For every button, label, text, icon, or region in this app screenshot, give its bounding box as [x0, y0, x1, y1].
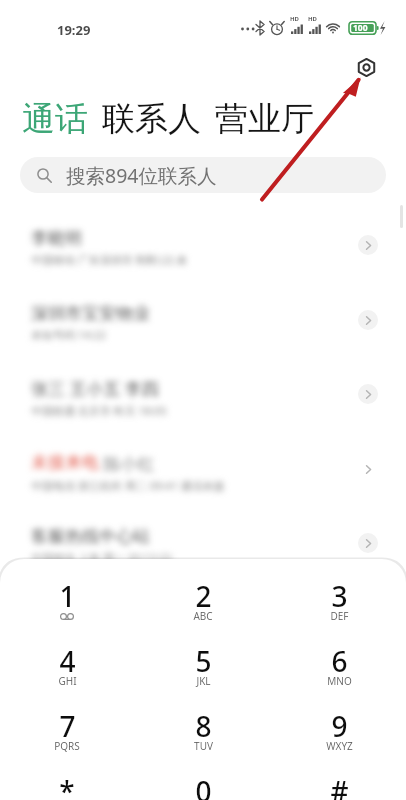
button[interactable]: 4: [22, 634, 112, 696]
staticText: 19:29: [57, 21, 91, 39]
staticText: 通话: [22, 98, 88, 140]
button[interactable]: 6: [294, 634, 384, 696]
staticText: 客服热线中心站: [31, 526, 150, 547]
button[interactable]: 未接来电: [0, 432, 406, 506]
staticText: MNO: [327, 674, 352, 688]
button[interactable]: 7: [22, 699, 112, 761]
staticText: 3: [331, 577, 348, 615]
staticText: 2: [195, 577, 212, 615]
staticText: 6: [331, 642, 348, 680]
button[interactable]: *: [22, 764, 112, 800]
staticText: 9: [331, 707, 348, 745]
button[interactable]: #: [294, 764, 384, 800]
staticText: 0: [195, 772, 212, 800]
staticText: HD: [308, 15, 317, 23]
staticText: 8: [195, 707, 212, 745]
button[interactable]: 0: [158, 764, 248, 800]
staticText: 未接来电: [31, 452, 99, 473]
staticText: 搜索894位联系人: [66, 162, 217, 189]
button[interactable]: 通话: [22, 98, 88, 140]
staticText: *: [59, 772, 75, 800]
button[interactable]: Settings: [345, 46, 385, 86]
button[interactable]: 营业厅: [215, 98, 314, 140]
staticText: 中国联通 北京市 昨天 18:05: [31, 403, 167, 418]
staticText: WXYZ: [326, 739, 353, 753]
staticText: 5: [195, 642, 212, 680]
staticText: 7: [59, 707, 76, 745]
staticText: PQRS: [54, 739, 80, 753]
staticText: 100: [353, 22, 368, 34]
button[interactable]: 搜索894位联系人: [20, 157, 386, 193]
staticText: 中国移动 上海 周一 20:13 (2): [31, 550, 172, 565]
button[interactable]: 深圳市宝安物业: [0, 283, 406, 357]
staticText: 1: [59, 577, 76, 615]
staticText: DEF: [330, 609, 349, 623]
button[interactable]: 张三 王小五 李四: [0, 357, 406, 431]
staticText: #: [330, 772, 349, 800]
staticText: JKL: [196, 674, 211, 688]
staticText: ABC: [193, 609, 213, 623]
staticText: 中国电信 浙江杭州 周二 09:41 通话未接: [31, 478, 225, 493]
staticText: TUV: [194, 739, 213, 753]
staticText: 未知号码 14:22: [31, 327, 106, 342]
staticText: 陈小红: [99, 452, 155, 475]
staticText: HD: [290, 15, 299, 23]
staticText: 深圳市宝安物业: [31, 303, 150, 324]
staticText: 营业厅: [215, 98, 314, 140]
button[interactable]: 9: [294, 699, 384, 761]
button[interactable]: 联系人: [102, 98, 201, 140]
button[interactable]: 李晓明: [0, 208, 406, 282]
button[interactable]: 客服热线中心站: [0, 506, 406, 580]
button[interactable]: 5: [158, 634, 248, 696]
button[interactable]: 8: [158, 699, 248, 761]
staticText: 李晓明: [31, 228, 82, 249]
staticText: GHI: [58, 674, 77, 688]
staticText: 中国移动 广东深圳市 刚刚 (2) 来: [31, 252, 188, 267]
button[interactable]: 1: [22, 569, 112, 631]
button[interactable]: 3: [294, 569, 384, 631]
staticText: 4: [59, 642, 76, 680]
staticText: 张三 王小五 李四: [31, 377, 159, 400]
staticText: 联系人: [102, 98, 201, 140]
button[interactable]: 2: [158, 569, 248, 631]
